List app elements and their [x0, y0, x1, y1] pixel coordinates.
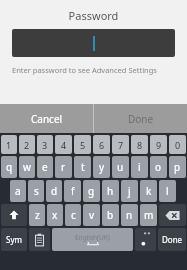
button[interactable]: 4: [55, 135, 72, 154]
staticText: w: [23, 160, 31, 174]
button[interactable]: Shift: [1, 204, 27, 226]
staticText: 8: [137, 139, 143, 151]
button[interactable]: Done: [94, 104, 187, 133]
button[interactable]: Period: [135, 228, 156, 251]
button[interactable]: w: [19, 156, 35, 178]
staticText: Done: [128, 112, 154, 126]
button[interactable]: x: [47, 204, 63, 226]
button[interactable]: m: [140, 204, 157, 226]
button[interactable]: 6: [93, 135, 110, 154]
staticText: f: [71, 184, 75, 198]
staticText: c: [71, 208, 76, 222]
staticText: b: [107, 208, 114, 222]
button[interactable]: 7: [112, 135, 129, 154]
button[interactable]: Password input: [12, 29, 175, 57]
button[interactable]: Sym: [1, 228, 27, 251]
button[interactable]: 5: [74, 135, 91, 154]
staticText: t: [81, 160, 85, 174]
staticText: 2: [24, 139, 30, 151]
staticText: u: [117, 160, 124, 174]
button[interactable]: Done: [158, 228, 186, 251]
button[interactable]: 8: [131, 135, 148, 154]
button[interactable]: q: [1, 156, 17, 178]
button[interactable]: 0: [169, 135, 186, 154]
staticText: 3: [42, 139, 48, 151]
staticText: l: [166, 184, 169, 198]
staticText: Done: [162, 234, 183, 245]
staticText: e: [42, 160, 48, 174]
button[interactable]: s: [28, 180, 44, 202]
button[interactable]: e: [37, 156, 53, 178]
button[interactable]: y: [93, 156, 110, 178]
button[interactable]: Clipboard: [29, 228, 50, 251]
button[interactable]: b: [102, 204, 119, 226]
button[interactable]: c: [65, 204, 81, 226]
staticText: p: [174, 160, 181, 174]
button[interactable]: k: [140, 180, 157, 202]
staticText: i: [138, 160, 141, 174]
button[interactable]: r: [55, 156, 72, 178]
button[interactable]: 2: [19, 135, 35, 154]
staticText: z: [35, 208, 40, 222]
button[interactable]: Backspace: [159, 204, 186, 226]
button[interactable]: j: [121, 180, 138, 202]
staticText: y: [99, 160, 105, 174]
staticText: v: [89, 208, 95, 222]
button[interactable]: n: [121, 204, 138, 226]
staticText: 0: [175, 139, 181, 151]
staticText: q: [6, 160, 13, 174]
button[interactable]: t: [74, 156, 91, 178]
staticText: n: [126, 208, 133, 222]
staticText: g: [88, 184, 95, 198]
staticText: 1: [6, 139, 12, 151]
staticText: o: [155, 160, 162, 174]
button[interactable]: p: [169, 156, 186, 178]
staticText: m: [144, 208, 154, 222]
staticText: k: [146, 184, 152, 198]
staticText: s: [34, 184, 39, 198]
button[interactable]: English(UK): [52, 228, 133, 251]
button[interactable]: u: [112, 156, 129, 178]
button[interactable]: i: [131, 156, 148, 178]
staticText: English(UK): [75, 233, 110, 242]
staticText: j: [128, 184, 131, 198]
staticText: x: [52, 208, 58, 222]
button[interactable]: 9: [150, 135, 167, 154]
button[interactable]: d: [46, 180, 62, 202]
button[interactable]: a: [10, 180, 26, 202]
button[interactable]: l: [159, 180, 176, 202]
staticText: 4: [61, 139, 67, 151]
button[interactable]: g: [83, 180, 100, 202]
button[interactable]: o: [150, 156, 167, 178]
staticText: Cancel: [31, 112, 63, 126]
staticText: Password: [0, 8, 187, 23]
button[interactable]: f: [64, 180, 81, 202]
staticText: d: [51, 184, 58, 198]
staticText: a: [15, 184, 21, 198]
staticText: 9: [156, 139, 162, 151]
staticText: 6: [99, 139, 105, 151]
button[interactable]: Cancel: [0, 104, 93, 133]
button[interactable]: z: [29, 204, 45, 226]
staticText: r: [61, 160, 66, 174]
staticText: h: [107, 184, 114, 198]
button[interactable]: v: [83, 204, 100, 226]
staticText: 5: [80, 139, 86, 151]
staticText: 7: [118, 139, 124, 151]
button[interactable]: 3: [37, 135, 53, 154]
button[interactable]: h: [102, 180, 119, 202]
staticText: Enter password to see Advanced Settings: [12, 65, 157, 75]
staticText: Sym: [6, 234, 22, 245]
button[interactable]: 1: [1, 135, 17, 154]
